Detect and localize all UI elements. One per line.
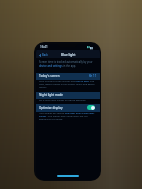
staticText: Back [42, 53, 48, 57]
button[interactable]: Section [36, 104, 100, 112]
button[interactable]: Section [36, 92, 100, 99]
staticText: Today's screen [39, 74, 60, 78]
staticText: Total includes screen unlocks and time i… [39, 80, 96, 89]
button[interactable]: Back [39, 53, 48, 57]
staticText: Night light mode [39, 93, 63, 97]
button[interactable]: Night light mode [39, 93, 63, 97]
button[interactable]: Section [36, 73, 100, 80]
button[interactable]: Toggle optimise display [87, 105, 95, 110]
staticText: Set a timer after sunset to reduce expos… [39, 99, 86, 102]
staticText: ▮▮ [90, 46, 94, 49]
staticText: Your display will reduce blue light from… [39, 112, 96, 121]
staticText: ▮▮ [87, 46, 90, 49]
staticText: Blue light [61, 53, 76, 57]
button[interactable]: Today's screen [39, 74, 97, 78]
staticText: 6h 11 [89, 74, 97, 78]
staticText: 16:41 [40, 45, 48, 49]
staticText: Screen time is tracked automatically by … [39, 60, 95, 68]
staticText: Optimise display [39, 106, 63, 110]
